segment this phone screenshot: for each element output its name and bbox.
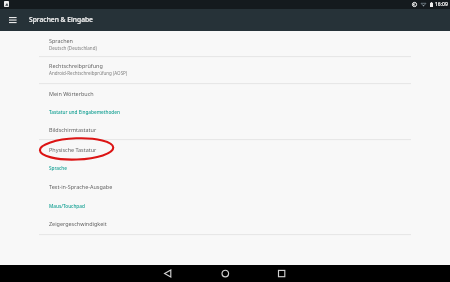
button[interactable]: Rechtschreibprüfung bbox=[39, 57, 411, 83]
staticText: Deutsch (Deutschland) bbox=[49, 45, 97, 51]
staticText: Physische Tastatur bbox=[49, 146, 97, 153]
staticText: Sprache bbox=[49, 165, 67, 171]
staticText: Text-in-Sprache-Ausgabe bbox=[49, 183, 113, 190]
staticText: Bildschirmtastatur bbox=[49, 126, 97, 133]
button[interactable]: Zeigergeschwindigkeit bbox=[39, 214, 411, 234]
staticText: Rechtschreibprüfung bbox=[49, 62, 103, 69]
staticText: Sprachen & Eingabe bbox=[29, 15, 93, 24]
button[interactable]: Sprachen bbox=[39, 31, 411, 56]
staticText: Tastatur und Eingabemethoden bbox=[49, 109, 120, 115]
staticText: Zeigergeschwindigkeit bbox=[49, 220, 107, 227]
staticText: Maus/Touchpad bbox=[49, 203, 85, 209]
button[interactable]: Mein Wörterbuch bbox=[39, 84, 411, 103]
staticText: Sprachen bbox=[49, 37, 73, 44]
button[interactable]: Recent apps bbox=[263, 265, 300, 282]
button[interactable]: Bildschirmtastatur bbox=[39, 120, 411, 139]
staticText: 16:09 bbox=[435, 1, 448, 8]
staticText: Android-Rechtschreibprüfung (AOSP) bbox=[49, 70, 128, 76]
staticText: Mein Wörterbuch bbox=[49, 90, 94, 97]
button[interactable]: Physische Tastatur bbox=[39, 140, 411, 159]
button[interactable]: Text-in-Sprache-Ausgabe bbox=[39, 178, 411, 197]
button[interactable]: Home bbox=[207, 265, 244, 282]
button[interactable]: Back bbox=[150, 265, 187, 282]
button[interactable]: Open navigation drawer bbox=[0, 9, 25, 31]
